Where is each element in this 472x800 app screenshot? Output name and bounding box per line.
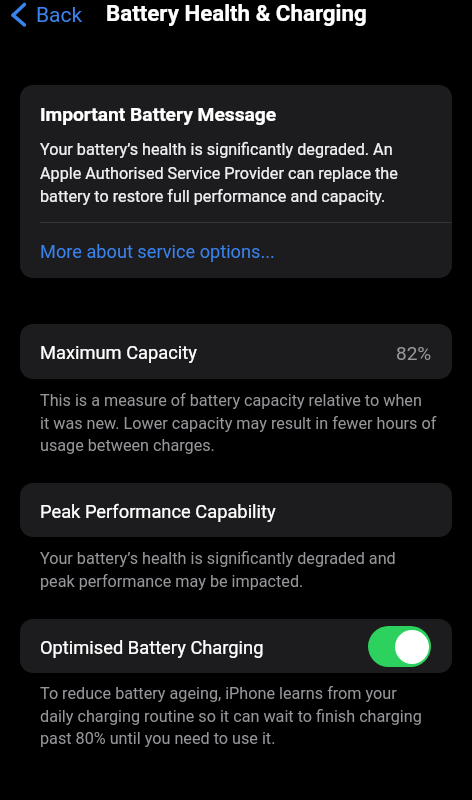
staticText: To reduce battery ageing, iPhone learns … <box>40 684 422 748</box>
staticText: Maximum Capacity <box>40 342 197 363</box>
staticText: Battery Health & Charging <box>106 0 367 26</box>
button[interactable]: Optimised Battery Charging toggle <box>368 626 431 667</box>
staticText: Peak Performance Capability <box>40 501 276 522</box>
staticText: Optimised Battery Charging <box>40 637 264 658</box>
button[interactable]: Back <box>4 0 88 34</box>
button[interactable]: Maximum Capacity <box>20 324 452 379</box>
staticText: 82% <box>396 342 432 364</box>
staticText: Important Battery Message <box>40 103 277 126</box>
staticText: Your battery’s health is significantly d… <box>40 140 398 206</box>
button[interactable]: Optimised Battery Charging <box>20 619 452 673</box>
button[interactable]: Peak Performance Capability <box>20 483 452 537</box>
staticText: Your battery’s health is significantly d… <box>40 549 396 591</box>
staticText: More about service options... <box>40 241 275 262</box>
staticText: This is a measure of battery capacity re… <box>40 391 437 455</box>
staticText: Back <box>36 3 83 28</box>
button[interactable]: More about service options... <box>20 223 452 278</box>
